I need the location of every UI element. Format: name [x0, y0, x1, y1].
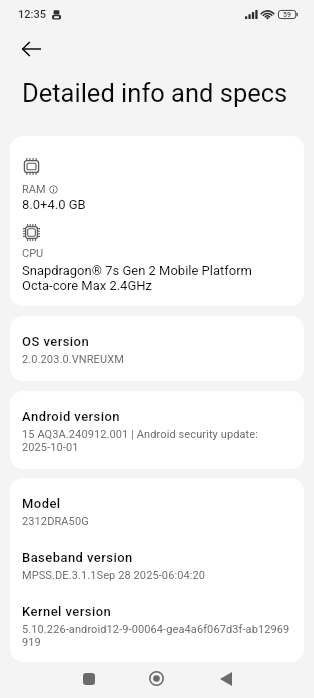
staticText: MPSS.DE.3.1.1Sep 28 2025-06:04:20: [22, 569, 206, 582]
button[interactable]: Back: [14, 32, 48, 66]
staticText: 2.0.203.0.VNREUXM: [22, 353, 124, 366]
staticText: OS version: [22, 334, 90, 349]
staticText: 15 AQ3A.240912.001 | Android security up…: [22, 428, 258, 454]
staticText: Kernel version: [22, 604, 112, 619]
staticText: 59: [283, 11, 291, 19]
staticText: 12:35: [18, 8, 46, 21]
button[interactable]: Back: [207, 660, 244, 697]
staticText: Model: [22, 496, 61, 511]
staticText: CPU: [22, 247, 44, 260]
staticText: Snapdragon® 7s Gen 2 Mobile Platform Oct…: [22, 263, 253, 293]
staticText: Baseband version: [22, 550, 133, 565]
staticText: 5.10.226-android12-9-00064-gea4a6f067d3f…: [22, 623, 290, 649]
button[interactable]: Model: [10, 478, 304, 662]
staticText: RAM: [22, 183, 46, 196]
button[interactable]: Android version: [10, 391, 304, 469]
button[interactable]: Home: [138, 660, 175, 697]
button[interactable]: RAM: [10, 136, 304, 306]
staticText: 2312DRA50G: [22, 515, 89, 528]
staticText: Detailed info and specs: [22, 78, 288, 108]
button[interactable]: Recent apps: [70, 660, 107, 697]
button[interactable]: OS version: [10, 316, 304, 381]
staticText: Android version: [22, 409, 121, 424]
staticText: 8.0+4.0 GB: [22, 197, 86, 212]
